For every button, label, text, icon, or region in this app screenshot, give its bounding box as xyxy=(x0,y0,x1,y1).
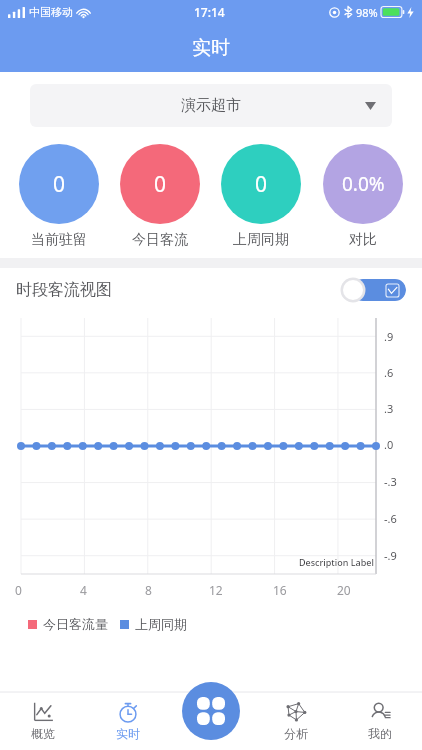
staticText: 12 xyxy=(209,582,223,598)
staticText: -.6 xyxy=(384,511,397,526)
button[interactable]: 0 xyxy=(210,144,312,249)
staticText: 0 xyxy=(255,170,268,199)
button[interactable]: 更多 xyxy=(182,682,240,740)
staticText: .3 xyxy=(384,401,394,416)
staticText: .9 xyxy=(384,329,394,344)
staticText: 概览 xyxy=(31,726,55,741)
staticText: 4 xyxy=(80,582,87,598)
staticText: 当前驻留 xyxy=(31,231,87,249)
staticText: -.3 xyxy=(384,474,397,489)
staticText: 98% xyxy=(356,5,378,20)
staticText: 分析 xyxy=(284,726,308,741)
staticText: 0.0% xyxy=(342,171,385,197)
button[interactable]: 实时 xyxy=(85,692,170,750)
staticText: Description Label xyxy=(299,556,374,568)
staticText: 0 xyxy=(154,170,167,199)
staticText: 我的 xyxy=(368,726,392,741)
staticText: 今日客流 xyxy=(132,231,188,249)
button[interactable]: 演示超市 xyxy=(30,84,392,127)
button[interactable]: 0.0% xyxy=(312,144,414,249)
staticText: 实时 xyxy=(116,726,140,741)
button[interactable]: 我的 xyxy=(338,692,422,750)
staticText: 上周同期 xyxy=(135,616,187,632)
button[interactable]: 概览 xyxy=(0,692,85,750)
staticText: 8 xyxy=(145,582,152,598)
staticText: 实时 xyxy=(192,36,230,60)
staticText: .6 xyxy=(384,365,394,380)
button[interactable]: 分析 xyxy=(254,692,338,750)
staticText: 17:14 xyxy=(194,4,225,20)
staticText: 20 xyxy=(337,582,351,598)
staticText: 演示超市 xyxy=(181,96,241,115)
staticText: 今日客流量 xyxy=(43,616,108,632)
staticText: 中国移动 xyxy=(29,5,73,19)
button[interactable]: 0 xyxy=(8,144,109,249)
staticText: 0 xyxy=(15,582,22,598)
button[interactable]: 0 xyxy=(109,144,210,249)
staticText: 16 xyxy=(273,582,287,598)
staticText: .0 xyxy=(384,437,394,452)
staticText: 上周同期 xyxy=(233,231,289,249)
staticText: 对比 xyxy=(349,231,377,249)
staticText: 时段客流视图 xyxy=(16,280,112,300)
button[interactable]: 切换视图 xyxy=(340,277,406,303)
staticText: 0 xyxy=(53,170,66,199)
staticText: -.9 xyxy=(384,548,397,563)
